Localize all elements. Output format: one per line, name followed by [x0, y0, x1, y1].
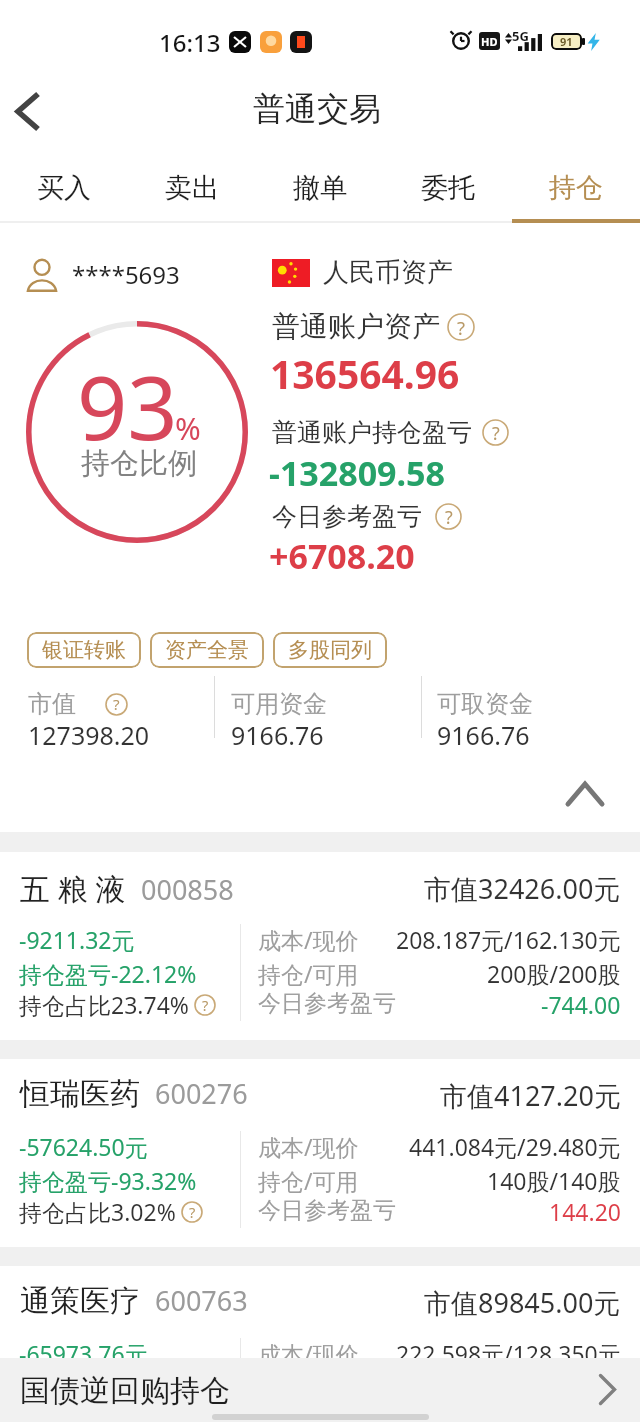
- staticText: 市值: [28, 689, 76, 719]
- staticText: 持仓占比23.74%: [19, 989, 189, 1020]
- staticText: 持仓盈亏-93.32%: [19, 1165, 197, 1196]
- button[interactable]: 委托: [384, 152, 512, 223]
- staticText: 208.187元/162.130元: [396, 924, 621, 955]
- staticText: 93: [77, 346, 178, 466]
- staticText: 可取资金: [437, 689, 533, 719]
- staticText: 127398.20: [28, 718, 150, 752]
- staticText: 成本/现价: [258, 1131, 359, 1162]
- staticText: ****5693: [72, 258, 180, 291]
- staticText: ?: [189, 1202, 196, 1222]
- staticText: 人民币资产: [323, 256, 453, 289]
- staticText: 9166.76: [231, 718, 324, 752]
- staticText: 多股同列: [288, 637, 372, 663]
- staticText: 五 粮 液: [20, 868, 126, 909]
- staticText: ?: [445, 505, 453, 529]
- staticText: 国债逆回购持仓: [20, 1372, 230, 1410]
- staticText: 600276: [155, 1075, 248, 1112]
- staticText: 持仓比例: [81, 445, 197, 482]
- button[interactable]: 买入: [0, 152, 128, 223]
- staticText: -9211.32元: [19, 924, 135, 955]
- staticText: 卖出: [165, 171, 219, 205]
- staticText: 今日参考盈亏: [258, 989, 396, 1018]
- staticText: HD: [481, 34, 498, 49]
- button[interactable]: 撤单: [256, 152, 384, 223]
- staticText: ?: [492, 421, 500, 445]
- staticText: 233.10: [549, 1403, 621, 1422]
- staticText: 银证转账: [42, 637, 126, 663]
- staticText: 200股/200股: [487, 958, 621, 989]
- button[interactable]: 恒瑞医药: [0, 1059, 640, 1247]
- button[interactable]: Back: [0, 83, 58, 141]
- staticText: 今日参考盈亏: [258, 1196, 396, 1225]
- staticText: +6708.20: [269, 533, 415, 579]
- staticText: 136564.96: [270, 347, 460, 400]
- staticText: 委托: [421, 171, 475, 205]
- staticText: 持仓/可用: [258, 1165, 359, 1196]
- staticText: 441.084元/29.480元: [409, 1131, 621, 1162]
- staticText: -57624.50元: [19, 1131, 148, 1162]
- staticText: 持仓占比3.02%: [19, 1196, 176, 1227]
- staticText: 成本/现价: [258, 1338, 359, 1369]
- staticText: 144.20: [549, 1196, 621, 1227]
- button[interactable]: Collapse: [561, 770, 609, 818]
- staticText: 恒瑞医药: [20, 1075, 140, 1113]
- staticText: 000858: [141, 871, 234, 908]
- staticText: ?: [457, 315, 466, 340]
- staticText: 持仓占比12.34%: [19, 1403, 189, 1422]
- staticText: 成本/现价: [258, 924, 359, 955]
- button[interactable]: 资产全景: [150, 632, 264, 668]
- staticText: 资产全景: [165, 637, 249, 663]
- staticText: 222.598元/128.350元: [396, 1338, 621, 1369]
- staticText: 市值89845.00元: [424, 1284, 621, 1321]
- staticText: -132809.58: [269, 450, 446, 496]
- staticText: -744.00: [541, 989, 621, 1020]
- button[interactable]: 卖出: [128, 152, 256, 223]
- staticText: ?: [113, 694, 120, 715]
- staticText: 持仓: [549, 171, 603, 205]
- staticText: 可用资金: [231, 689, 327, 719]
- staticText: 持仓盈亏-22.12%: [19, 958, 197, 989]
- button[interactable]: 银证转账: [27, 632, 141, 668]
- staticText: 持仓盈亏-42.34%: [19, 1372, 197, 1403]
- staticText: 普通账户持仓盈亏: [272, 417, 472, 448]
- staticText: 700股/700股: [487, 1372, 621, 1403]
- staticText: 市值32426.00元: [424, 870, 621, 907]
- staticText: 600763: [155, 1282, 248, 1319]
- staticText: 140股/140股: [487, 1165, 621, 1196]
- staticText: 91: [560, 34, 573, 49]
- staticText: 持仓/可用: [258, 958, 359, 989]
- staticText: 9166.76: [437, 718, 530, 752]
- staticText: 撤单: [293, 171, 347, 205]
- staticText: ?: [202, 995, 209, 1015]
- button[interactable]: 五 粮 液: [0, 852, 640, 1040]
- button[interactable]: 通策医疗: [0, 1266, 640, 1422]
- staticText: 今日参考盈亏: [272, 501, 422, 532]
- staticText: 买入: [37, 171, 91, 205]
- button[interactable]: [0, 1358, 640, 1422]
- staticText: %: [175, 407, 201, 449]
- button[interactable]: 持仓: [512, 152, 640, 223]
- staticText: 5G: [512, 27, 529, 45]
- staticText: 市值4127.20元: [440, 1077, 621, 1114]
- staticText: -65973.76元: [19, 1338, 148, 1369]
- button[interactable]: 多股同列: [273, 632, 387, 668]
- staticText: 16:13: [159, 26, 221, 59]
- staticText: 通策医疗: [20, 1282, 140, 1320]
- staticText: 普通账户资产: [272, 309, 440, 344]
- staticText: 普通交易: [253, 89, 381, 129]
- staticText: 今日参考盈亏: [258, 1403, 396, 1422]
